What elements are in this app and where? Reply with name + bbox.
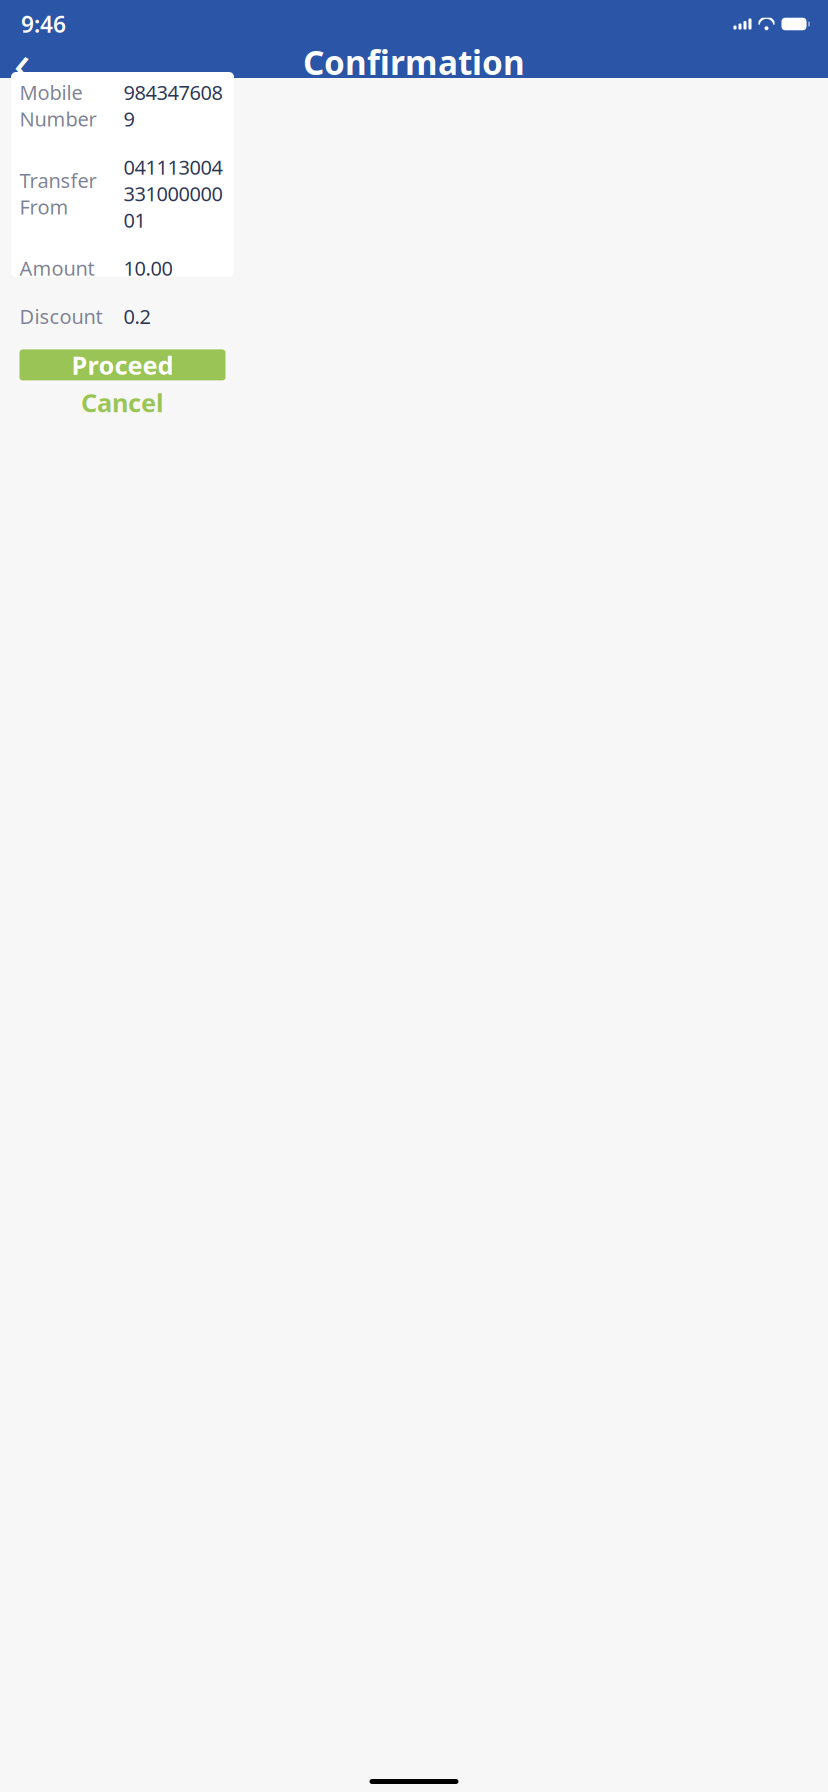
staticText: 9:46: [21, 9, 66, 39]
staticText: 9843476089: [123, 79, 222, 132]
staticText: Proceed: [71, 348, 173, 382]
staticText: Transfer From: [19, 167, 96, 220]
staticText: 10.00: [123, 255, 172, 281]
staticText: Mobile Number: [19, 79, 96, 132]
staticText: Confirmation: [303, 40, 525, 84]
staticText: 0.2: [123, 303, 150, 329]
button[interactable]: Back: [0, 42, 44, 82]
staticText: Amount: [19, 255, 94, 281]
staticText: 04111300433100000001: [123, 154, 222, 233]
button[interactable]: Cancel: [19, 386, 225, 418]
button[interactable]: Proceed: [19, 349, 225, 380]
staticText: Cancel: [81, 386, 164, 419]
staticText: Discount: [19, 303, 102, 329]
staticText: ‹: [13, 25, 30, 99]
